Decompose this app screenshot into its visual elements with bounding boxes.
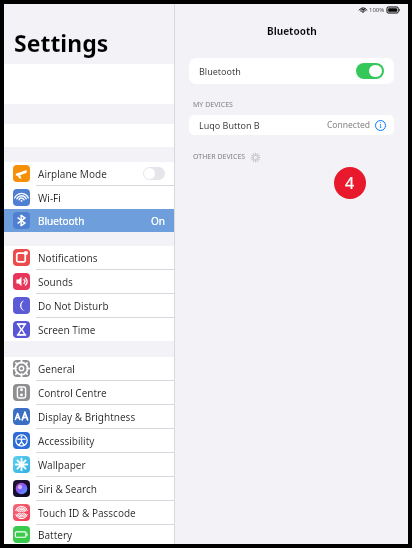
- staticText: General: [38, 362, 165, 376]
- button[interactable]: Screen Time: [4, 318, 174, 341]
- staticText: Sounds: [38, 275, 165, 289]
- button[interactable]: Wallpaper: [4, 453, 174, 476]
- staticText: i: [379, 121, 382, 131]
- button[interactable]: Notifications: [4, 246, 174, 269]
- button[interactable]: Control Centre: [4, 381, 174, 404]
- staticText: Bluetooth: [267, 24, 317, 38]
- staticText: Airplane Mode: [38, 167, 143, 181]
- button[interactable]: Wi-Fi: [4, 186, 174, 209]
- button[interactable]: Siri & Search: [4, 477, 174, 500]
- staticText: Notifications: [38, 251, 165, 265]
- staticText: Do Not Disturb: [38, 299, 165, 313]
- button[interactable]: Do Not Disturb: [4, 294, 174, 317]
- staticText: Bluetooth: [38, 214, 151, 228]
- staticText: Connected: [327, 119, 370, 131]
- staticText: 100%: [369, 6, 385, 14]
- staticText: Display & Brightness: [38, 410, 165, 424]
- button[interactable]: Display & Brightness: [4, 405, 174, 428]
- button[interactable]: More info: [375, 120, 386, 131]
- button[interactable]: Battery: [4, 525, 174, 544]
- staticText: Accessibility: [38, 434, 165, 448]
- button[interactable]: Bluetooth: [189, 58, 394, 84]
- staticText: Battery: [38, 528, 165, 542]
- staticText: Wallpaper: [38, 458, 165, 472]
- staticText: Touch ID & Passcode: [38, 506, 165, 520]
- staticText: Luqo Button B: [199, 119, 327, 131]
- staticText: Bluetooth: [199, 65, 356, 77]
- staticText: Settings: [14, 27, 109, 58]
- staticText: Wi-Fi: [38, 191, 165, 205]
- staticText: Control Centre: [38, 386, 165, 400]
- button[interactable]: Luqo Button B: [189, 115, 394, 135]
- button[interactable]: 4: [334, 167, 366, 199]
- staticText: 4: [345, 172, 355, 194]
- staticText: OTHER DEVICES: [193, 152, 246, 162]
- staticText: On: [151, 214, 165, 228]
- staticText: Siri & Search: [38, 482, 165, 496]
- staticText: MY DEVICES: [193, 100, 233, 110]
- button[interactable]: Touch ID & Passcode: [4, 501, 174, 524]
- button[interactable]: Bluetooth: [4, 209, 174, 232]
- button[interactable]: Airplane Mode: [4, 162, 174, 185]
- button[interactable]: Accessibility: [4, 429, 174, 452]
- button[interactable]: General: [4, 357, 174, 380]
- button[interactable]: Sounds: [4, 270, 174, 293]
- staticText: Screen Time: [38, 323, 165, 337]
